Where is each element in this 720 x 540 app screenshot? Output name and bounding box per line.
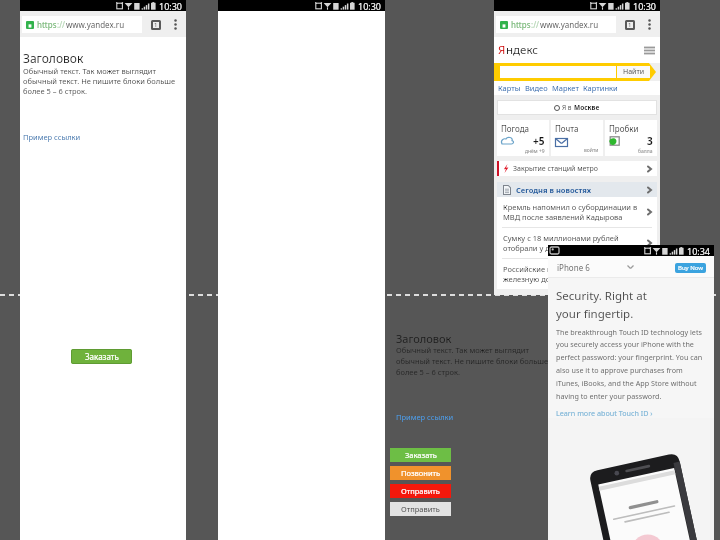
button[interactable]: Я в (497, 100, 657, 115)
staticText: Buy Now (678, 264, 704, 272)
button[interactable]: Позвонить (390, 466, 451, 480)
button[interactable]: Заказать (390, 448, 451, 462)
staticText: www.yandex.ru (66, 19, 125, 30)
button[interactable]: Отправить (390, 502, 451, 516)
staticText: Отправить (401, 504, 440, 514)
staticText: Заказать (85, 351, 119, 362)
button[interactable]: Почта (551, 120, 603, 156)
staticText: Заголовок (23, 50, 84, 66)
button[interactable]: Закрытие станций метро (497, 161, 657, 176)
staticText: +5 (533, 134, 545, 148)
button[interactable]: Menu (644, 46, 655, 55)
button[interactable]: Маркет (552, 83, 579, 93)
button[interactable]: Tabs (151, 20, 161, 30)
staticText: 10:30 (633, 0, 657, 11)
staticText: 10:30 (358, 0, 382, 11)
button[interactable]: Картинки (583, 83, 618, 93)
button[interactable]: Заказать (71, 349, 132, 364)
staticText: 10:34 (687, 245, 711, 256)
staticText: :// (531, 19, 540, 30)
button[interactable]: Карты (498, 83, 521, 93)
button[interactable]: Tabs (625, 20, 635, 30)
staticText: The breakthrough Touch ID technology let… (556, 327, 707, 401)
button[interactable]: Сумку с 18 миллионами рублей отобрали у … (497, 228, 657, 258)
button[interactable]: Кремль напомнил о субординации в МВД пос… (497, 197, 657, 227)
button[interactable]: Пробки (605, 120, 657, 156)
button[interactable]: Learn more about Touch ID › (556, 408, 653, 418)
staticText: 10:30 (159, 0, 183, 11)
button[interactable]: Найти (617, 66, 650, 78)
staticText: Security. Right at your fingertip. (556, 288, 647, 321)
staticText: Найти (623, 67, 645, 77)
staticText: Погода (501, 123, 530, 134)
button[interactable]: Видео (525, 83, 548, 93)
staticText: войти (584, 147, 599, 154)
button[interactable]: Пример ссылки (396, 412, 454, 422)
staticText: https (511, 19, 531, 30)
staticText: Пробки (609, 123, 639, 134)
staticText: Закрытие станций метро (513, 164, 599, 174)
staticText: 1 (154, 21, 158, 29)
button[interactable]: More options (644, 17, 655, 32)
button[interactable]: More options (170, 17, 181, 32)
staticText: www.yandex.ru (540, 19, 599, 30)
staticText: Позвонить (401, 468, 441, 478)
staticText: 3 (647, 134, 653, 148)
staticText: :// (57, 19, 66, 30)
staticText: Кремль напомнил о субординации в МВД пос… (503, 202, 643, 222)
button[interactable]: Отправить (390, 484, 451, 498)
staticText: Сумку с 18 миллионами рублей отобрали у … (503, 233, 643, 253)
button[interactable]: Choose device (627, 265, 634, 269)
staticText: iPhone 6 (557, 262, 590, 273)
staticText: Заказать (405, 450, 437, 460)
staticText: Сегодня в новостях (516, 185, 592, 195)
staticText: ндекс (506, 42, 538, 58)
staticText: Почта (555, 123, 579, 134)
staticText: днём +9 (525, 148, 545, 154)
staticText: Я (498, 42, 506, 58)
button[interactable]: Погода (497, 120, 549, 156)
button[interactable]: Пример ссылки (23, 132, 81, 142)
staticText: Заголовок (396, 331, 452, 346)
staticText: балла (638, 148, 653, 154)
staticText: Обычный текст. Так может выглядит обычны… (23, 66, 181, 96)
staticText: Обычный текст. Так может выглядит обычны… (396, 345, 554, 377)
button[interactable]: Buy Now (675, 263, 706, 273)
button[interactable]: Сегодня в новостях (497, 182, 657, 197)
staticText: 1 (628, 21, 632, 29)
staticText: Я в (562, 103, 574, 112)
staticText: Москве (574, 103, 600, 112)
staticText: Отправить (401, 486, 440, 496)
staticText: Российские компании построят железную до… (503, 264, 643, 284)
staticText: https (37, 19, 57, 30)
button[interactable]: Российские компании построят железную до… (497, 259, 657, 289)
